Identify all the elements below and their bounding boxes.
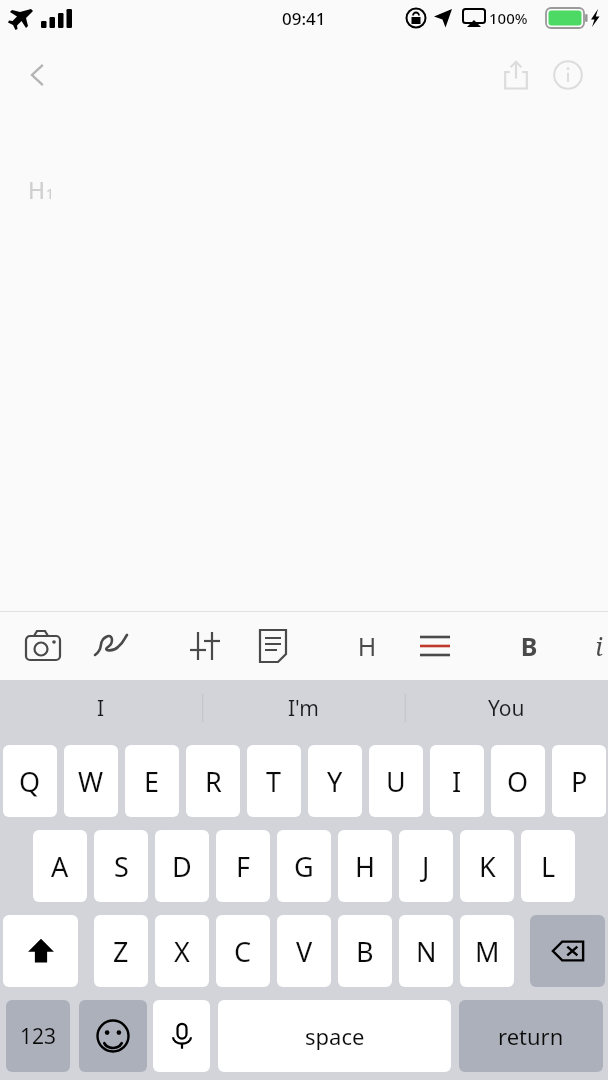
button[interactable]: M [460,915,514,987]
button[interactable]: Format tool [567,612,608,680]
staticText: Q [19,763,41,800]
button[interactable]: S [94,830,148,902]
button[interactable]: F [216,830,270,902]
button[interactable]: Share [490,49,542,101]
button[interactable]: Format tool [499,612,559,680]
staticText: B [356,933,374,970]
staticText: A [51,848,69,885]
button[interactable]: U [369,745,423,817]
button[interactable]: L [521,830,575,902]
button[interactable]: Back [12,49,64,101]
button[interactable]: I'm [202,680,405,736]
staticText: H [347,629,387,663]
staticText: return [498,1021,564,1051]
staticText: U [386,763,406,800]
button[interactable]: return [459,1000,603,1072]
staticText: I'm [288,694,319,723]
staticText: H [28,174,46,205]
button[interactable]: Format tool [243,612,303,680]
button[interactable]: X [155,915,209,987]
staticText: J [422,848,430,885]
button[interactable]: Info [542,49,594,101]
staticText: P [571,763,588,800]
staticText: X [174,933,190,970]
button[interactable]: Format tool [405,612,465,680]
button[interactable]: V [277,915,331,987]
button[interactable]: Z [94,915,148,987]
staticText: 09:41 [282,7,326,30]
staticText: R [205,763,222,800]
staticText: 100% [489,8,528,28]
staticText: I [97,694,105,723]
button[interactable]: Q [3,745,57,817]
button[interactable]: Format tool [13,612,73,680]
button[interactable]: Format tool [337,612,397,680]
button[interactable]: G [277,830,331,902]
staticText: You [488,694,525,723]
staticText: i [579,629,608,663]
staticText: E [144,763,160,800]
button[interactable]: A [33,830,87,902]
button[interactable]: You [405,680,608,736]
button[interactable]: Shift [3,915,78,987]
button[interactable]: N [399,915,453,987]
button[interactable]: Format tool [81,612,141,680]
staticText: Z [113,933,129,970]
staticText: K [479,848,496,885]
button[interactable]: B [338,915,392,987]
button[interactable]: C [216,915,270,987]
button[interactable]: space [218,1000,451,1072]
staticText: V [296,933,313,970]
button[interactable]: K [460,830,514,902]
button[interactable]: O [491,745,545,817]
button[interactable]: T [247,745,301,817]
button[interactable]: W [64,745,118,817]
staticText: G [294,848,314,885]
button[interactable]: Dictate [153,1000,210,1072]
button[interactable]: Backspace [530,915,605,987]
button[interactable]: I [0,680,202,736]
staticText: S [114,848,129,885]
staticText: N [416,933,437,970]
button[interactable]: J [399,830,453,902]
staticText: W [78,763,104,800]
button[interactable]: Format tool [175,612,235,680]
staticText: Y [327,763,343,800]
staticText: O [507,763,529,800]
button[interactable]: I [430,745,484,817]
staticText: D [172,848,192,885]
button[interactable]: Y [308,745,362,817]
button[interactable]: R [186,745,240,817]
staticText: T [266,763,282,800]
staticText: H [355,848,376,885]
button[interactable]: H [338,830,392,902]
button[interactable]: Emoji [79,1000,147,1072]
staticText: B [509,629,549,663]
staticText: 1 [46,184,55,203]
button[interactable]: E [125,745,179,817]
staticText: L [541,848,556,885]
button[interactable]: P [552,745,606,817]
staticText: M [475,933,500,970]
button[interactable]: D [155,830,209,902]
staticText: I [452,763,462,800]
staticText: F [236,848,251,885]
staticText: C [234,933,252,970]
staticText: 123 [20,1022,57,1051]
staticText: space [305,1021,365,1051]
button[interactable]: 123 [6,1000,70,1072]
